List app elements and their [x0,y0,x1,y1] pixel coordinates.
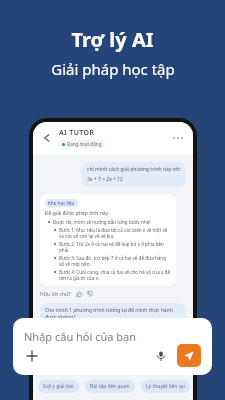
staticText: Bước 4: Cuối cùng, chia cả hai vế cho hệ… [59,269,171,281]
button[interactable]: More options [170,134,186,142]
staticText: Bước 3: Sau đó, trừ tiếp 7 ở cả hai vế đ… [59,255,171,267]
staticText: Bài tập liên quan [90,383,130,390]
button[interactable]: Bài tập liên quan [85,380,135,393]
staticText: Bước 2: Trừ 2x ở cả hai vế để loại bỏ x … [59,241,171,253]
staticText: Cho mình 1 phương trình tương tự để mình… [45,307,181,321]
staticText: Nhập câu hỏi của bạn [24,329,137,344]
staticText: Lý thuyết liên qu [146,383,185,390]
button[interactable]: Gợi ý giải bài [38,380,79,393]
staticText: Kho học liệu [48,200,75,206]
button[interactable]: Back [40,131,54,145]
button[interactable]: Like [75,290,83,298]
staticText: Đang hoạt động [67,141,102,147]
staticText: AI TUTOR [59,128,95,138]
button[interactable]: Send [177,344,201,367]
staticText: Bước 1: Mục tiêu là đưa tất cả các biến … [59,227,171,239]
staticText: Hữu ích chứ? [40,291,71,298]
staticText: Giải pháp học tập [51,59,175,79]
staticText: 3x + 7 = 2x + 12 [87,176,123,183]
staticText: chỉ mình cách giải phương trình này với: [87,166,181,173]
staticText: Để giải được phép tính này: [45,210,110,217]
staticText: Trợ lý AI [71,26,154,53]
button[interactable]: Add attachment [24,348,40,364]
staticText: Gợi ý giải bài [43,383,74,390]
button[interactable]: Dislike [86,290,94,298]
staticText: Được rồi, mình sẽ hướng dẫn từng bước nh… [53,219,151,225]
button[interactable]: Voice input [153,348,169,364]
button[interactable]: Lý thuyết liên qu [141,380,190,393]
